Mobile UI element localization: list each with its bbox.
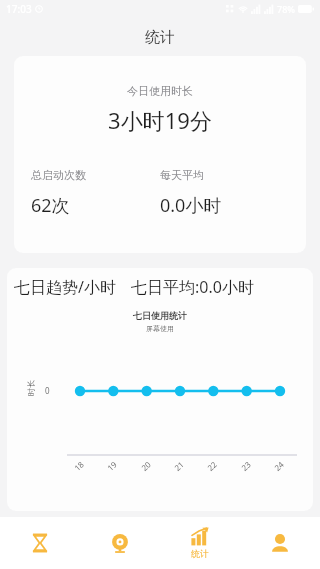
button[interactable]: 统计 xyxy=(160,517,240,569)
staticText: 七日使用统计 xyxy=(7,310,313,321)
staticText: 统计 xyxy=(191,548,209,559)
staticText: 22 xyxy=(205,458,219,473)
staticText: 时长 xyxy=(26,380,36,396)
staticText: 17:03 xyxy=(6,2,32,16)
staticText: 19 xyxy=(105,458,119,473)
staticText: 21 xyxy=(172,458,186,473)
staticText: 统计 xyxy=(145,28,175,47)
button[interactable]: 七日趋势/小时 xyxy=(7,268,313,511)
staticText: 七日平均:0.0小时 xyxy=(131,276,254,298)
staticText: 每天平均 xyxy=(160,168,204,182)
staticText: 0.0小时 xyxy=(160,193,222,218)
staticText: 今日使用时长 xyxy=(14,84,306,98)
staticText: 62次 xyxy=(31,193,70,218)
staticText: 总启动次数 xyxy=(31,168,86,182)
staticText: 0 xyxy=(45,385,50,396)
staticText: 3小时19分 xyxy=(14,105,306,135)
staticText: 23 xyxy=(239,458,253,473)
staticText: 18 xyxy=(72,458,86,473)
button[interactable]: Timer xyxy=(0,517,80,569)
button[interactable]: Focus xyxy=(80,517,160,569)
staticText: 24 xyxy=(272,458,286,473)
button[interactable]: Profile xyxy=(240,517,320,569)
staticText: 20 xyxy=(139,458,153,473)
staticText: 78% xyxy=(277,3,295,15)
button[interactable]: 今日使用时长 xyxy=(14,56,306,253)
staticText: 七日趋势/小时 xyxy=(14,276,116,298)
staticText: 屏幕使用 xyxy=(7,324,313,333)
